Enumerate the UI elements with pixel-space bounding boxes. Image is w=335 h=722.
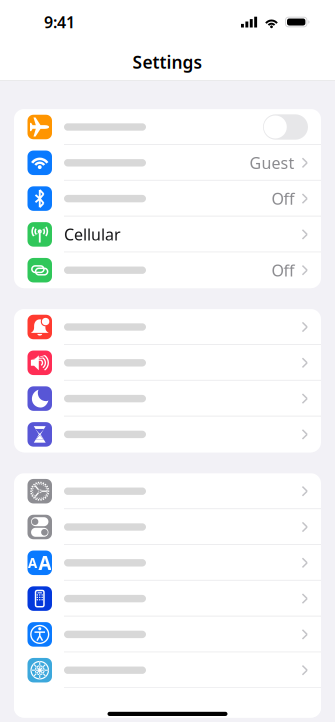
button[interactable] bbox=[14, 109, 321, 145]
button[interactable] bbox=[14, 652, 321, 688]
button[interactable] bbox=[14, 381, 321, 416]
button[interactable] bbox=[14, 309, 321, 345]
button[interactable] bbox=[14, 616, 321, 652]
button[interactable]: Off bbox=[14, 181, 321, 216]
button[interactable]: Guest bbox=[14, 145, 321, 181]
staticText: Cellular bbox=[64, 224, 121, 245]
button[interactable] bbox=[14, 345, 321, 381]
button[interactable]: Off bbox=[14, 252, 321, 288]
staticText: 9:41 bbox=[44, 11, 75, 33]
staticText: Settings bbox=[132, 50, 202, 73]
button[interactable]: Cellular bbox=[14, 216, 321, 252]
button[interactable] bbox=[14, 416, 321, 452]
staticText: Off bbox=[272, 260, 295, 281]
button[interactable] bbox=[14, 509, 321, 545]
staticText: Guest bbox=[250, 152, 295, 173]
button[interactable] bbox=[14, 473, 321, 509]
button[interactable] bbox=[14, 581, 321, 616]
staticText: Off bbox=[272, 188, 295, 209]
staticText: A bbox=[38, 550, 51, 575]
button[interactable]: A bbox=[14, 545, 321, 581]
staticText: A bbox=[28, 554, 37, 572]
